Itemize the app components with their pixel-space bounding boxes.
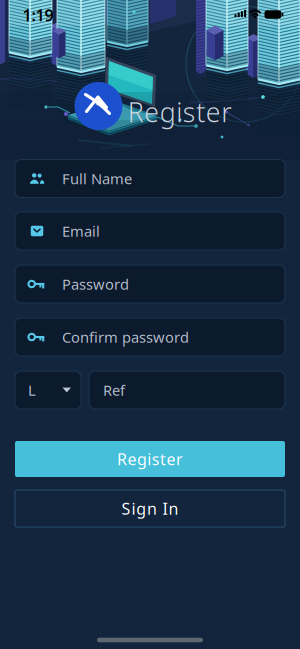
button[interactable]: Language bbox=[15, 371, 81, 409]
staticText: Register bbox=[117, 448, 183, 470]
staticText: Email bbox=[62, 221, 100, 241]
button[interactable]: Email bbox=[15, 212, 285, 250]
button[interactable]: Confirm password bbox=[15, 318, 285, 356]
staticText: Confirm password bbox=[62, 327, 189, 347]
button[interactable]: Ref bbox=[89, 371, 285, 409]
staticText: Password bbox=[62, 274, 129, 294]
button[interactable]: Password bbox=[15, 265, 285, 303]
staticText: 1:19 bbox=[22, 4, 53, 26]
staticText: Sign In bbox=[122, 498, 178, 519]
button[interactable]: Register bbox=[15, 441, 285, 477]
button[interactable]: Full Name bbox=[15, 159, 285, 197]
staticText: Register bbox=[128, 94, 232, 130]
staticText: Full Name bbox=[62, 169, 132, 188]
staticText: L bbox=[28, 380, 36, 400]
button[interactable]: Sign In bbox=[15, 490, 285, 527]
staticText: Ref bbox=[103, 380, 125, 400]
